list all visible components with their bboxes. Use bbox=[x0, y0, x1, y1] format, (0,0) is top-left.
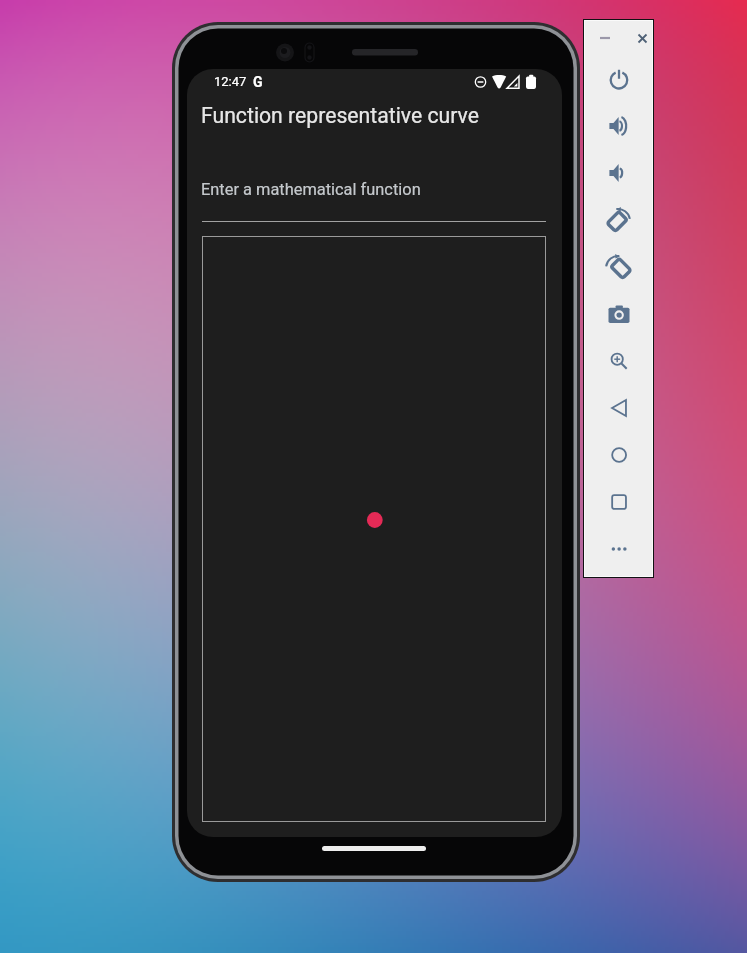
button[interactable]: Overview bbox=[585, 478, 652, 525]
button[interactable]: Minimize bbox=[593, 26, 617, 50]
button[interactable]: Zoom bbox=[585, 337, 652, 384]
button[interactable]: Home bbox=[585, 431, 652, 478]
button[interactable]: Rotate right bbox=[585, 196, 652, 243]
button[interactable]: Volume up bbox=[585, 102, 652, 149]
button[interactable]: Volume down bbox=[585, 149, 652, 196]
staticText: 12:47 bbox=[214, 74, 247, 89]
staticText: Function representative curve bbox=[201, 103, 479, 128]
button[interactable]: More bbox=[585, 525, 652, 572]
staticText: Enter a mathematical function bbox=[201, 180, 421, 199]
button[interactable]: Back bbox=[585, 384, 652, 431]
button[interactable]: Power bbox=[585, 55, 652, 102]
button[interactable]: Rotate left bbox=[585, 243, 652, 290]
button[interactable]: Close bbox=[632, 26, 652, 50]
staticText: G bbox=[253, 74, 263, 90]
button[interactable]: Screenshot bbox=[585, 290, 652, 337]
